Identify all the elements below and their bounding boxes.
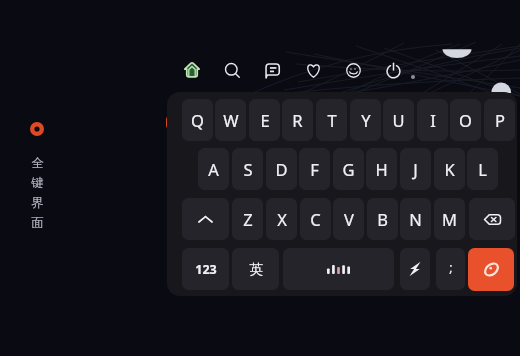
button[interactable]: Power xyxy=(379,56,407,84)
button[interactable]: Quick input xyxy=(400,248,430,290)
staticText: Q xyxy=(191,109,204,131)
button[interactable]: T xyxy=(316,99,347,141)
staticText: F xyxy=(310,158,319,180)
button[interactable]: M xyxy=(434,198,465,240)
staticText: M xyxy=(442,208,457,230)
staticText: O xyxy=(459,109,472,131)
staticText: Y xyxy=(361,109,371,131)
button[interactable]: L xyxy=(467,148,498,190)
button[interactable]: E xyxy=(249,99,280,141)
button[interactable]: G xyxy=(333,148,364,190)
staticText: D xyxy=(275,158,288,180)
staticText: R xyxy=(292,109,303,131)
button[interactable]: S xyxy=(232,148,263,190)
button[interactable]: I xyxy=(417,99,448,141)
staticText: 123 xyxy=(195,261,217,278)
button[interactable]: N xyxy=(400,198,431,240)
button[interactable]: Drag keyboard xyxy=(166,117,170,128)
button[interactable]: B xyxy=(367,198,398,240)
button[interactable]: Space xyxy=(283,248,394,290)
button[interactable]: 键 xyxy=(30,173,44,193)
button[interactable]: Emoji xyxy=(339,56,367,84)
staticText: L xyxy=(478,158,487,180)
button[interactable]: W xyxy=(215,99,246,141)
button[interactable]: 面 xyxy=(30,213,44,233)
button[interactable]: R xyxy=(282,99,313,141)
button[interactable]: C xyxy=(300,198,331,240)
button[interactable]: V xyxy=(333,198,364,240)
staticText: 键 xyxy=(31,175,44,191)
button[interactable]: U xyxy=(383,99,414,141)
staticText: P xyxy=(495,109,505,131)
staticText: X xyxy=(277,208,287,230)
button[interactable]: A xyxy=(198,148,229,190)
button[interactable]: Z xyxy=(232,198,263,240)
staticText: A xyxy=(208,158,219,180)
staticText: 全 xyxy=(31,155,44,171)
button[interactable]: Search xyxy=(218,56,246,84)
button[interactable]: K xyxy=(434,148,465,190)
button[interactable]: P xyxy=(484,99,515,141)
button[interactable]: Home xyxy=(178,56,206,84)
staticText: U xyxy=(392,109,405,131)
staticText: Z xyxy=(243,208,253,230)
staticText: K xyxy=(444,158,455,180)
staticText: 英 xyxy=(249,261,263,278)
staticText: T xyxy=(327,109,337,131)
staticText: W xyxy=(223,109,239,131)
staticText: 面 xyxy=(31,215,44,231)
button[interactable]: D xyxy=(266,148,297,190)
staticText: C xyxy=(310,208,321,230)
button[interactable]: Backspace xyxy=(469,198,515,240)
button[interactable]: Shift xyxy=(182,198,229,240)
button[interactable]: Favorites xyxy=(299,56,327,84)
button[interactable]: 全 xyxy=(30,153,44,173)
staticText: N xyxy=(409,208,422,230)
button[interactable]: J xyxy=(400,148,431,190)
button[interactable]: Messages xyxy=(258,56,286,84)
button[interactable]: F xyxy=(299,148,330,190)
staticText: E xyxy=(260,109,270,131)
staticText: J xyxy=(413,158,418,180)
staticText: H xyxy=(375,158,388,180)
button[interactable]: X xyxy=(266,198,297,240)
button[interactable]: Enter xyxy=(468,248,514,291)
button[interactable]: O xyxy=(450,99,481,141)
staticText: I xyxy=(430,109,436,131)
staticText: S xyxy=(243,158,253,180)
staticText: G xyxy=(342,158,355,180)
button[interactable]: 界 xyxy=(30,193,44,213)
staticText: B xyxy=(377,208,388,230)
staticText: ; xyxy=(449,259,453,276)
staticText: V xyxy=(344,208,354,230)
button[interactable]: Y xyxy=(350,99,381,141)
button[interactable]: ; xyxy=(436,248,465,290)
button[interactable]: 123 xyxy=(182,248,229,290)
button[interactable]: H xyxy=(366,148,397,190)
button[interactable]: Q xyxy=(182,99,213,141)
button[interactable]: 英 xyxy=(232,248,279,290)
staticText: 界 xyxy=(31,195,44,211)
